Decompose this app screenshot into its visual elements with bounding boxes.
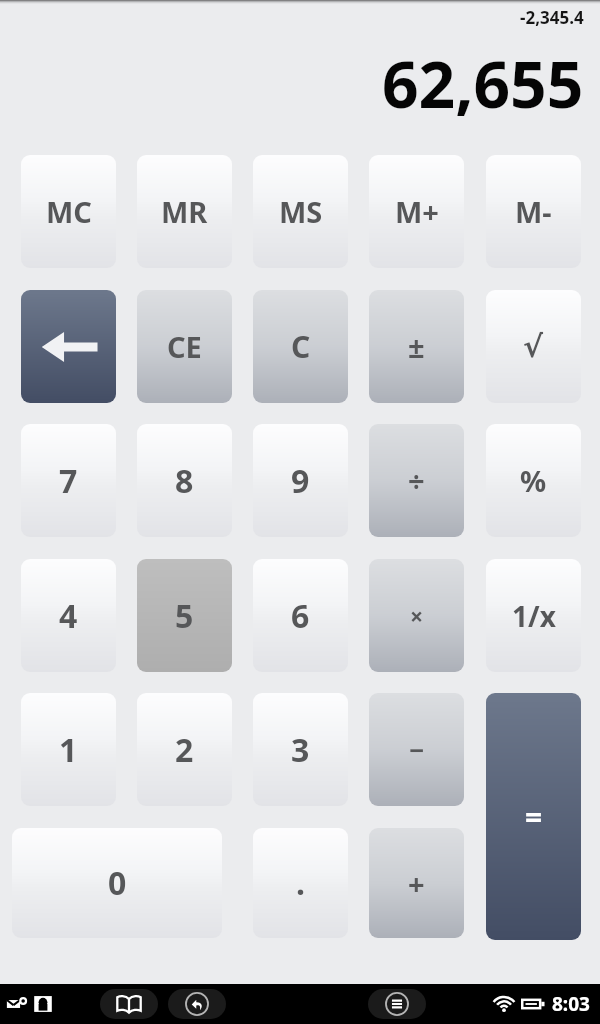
staticText: MS <box>279 192 323 231</box>
button[interactable]: . <box>253 828 348 938</box>
button[interactable]: ÷ <box>369 424 464 537</box>
staticText: + <box>408 864 425 903</box>
staticText: 1/x <box>512 597 556 635</box>
staticText: 8:03 <box>552 991 590 1017</box>
button[interactable]: − <box>369 693 464 806</box>
button[interactable]: √ <box>486 290 581 403</box>
staticText: √ <box>523 329 544 364</box>
staticText: 6 <box>291 594 310 638</box>
staticText: 0 <box>108 861 127 905</box>
staticText: 2 <box>175 728 194 772</box>
button[interactable]: Menu <box>368 989 426 1019</box>
button[interactable]: MC <box>21 155 116 268</box>
staticText: 9 <box>291 459 310 503</box>
button[interactable]: × <box>369 559 464 672</box>
staticText: 7 <box>59 459 78 503</box>
staticText: MC <box>46 192 92 231</box>
button[interactable]: % <box>486 424 581 537</box>
staticText: M+ <box>395 192 439 231</box>
button[interactable]: 5 <box>137 559 232 672</box>
button[interactable]: 7 <box>21 424 116 537</box>
button[interactable]: C <box>253 290 348 403</box>
staticText: ÷ <box>408 461 425 500</box>
staticText: 5 <box>175 594 194 638</box>
staticText: -2,345.4 <box>520 6 584 29</box>
staticText: ± <box>408 327 425 366</box>
staticText: MR <box>161 192 208 231</box>
button[interactable]: CE <box>137 290 232 403</box>
button[interactable]: Equals <box>486 693 581 940</box>
button[interactable]: M+ <box>369 155 464 268</box>
staticText: 62,655 <box>382 40 584 127</box>
button[interactable]: 4 <box>21 559 116 672</box>
staticText: C <box>291 326 311 367</box>
staticText: 4 <box>59 594 78 638</box>
button[interactable]: 9 <box>253 424 348 537</box>
staticText: % <box>520 461 547 500</box>
staticText: 1 <box>59 728 78 772</box>
button[interactable]: 1 <box>21 693 116 806</box>
staticText: . <box>296 861 305 905</box>
button[interactable]: Home <box>100 989 158 1019</box>
staticText: 8 <box>175 459 194 503</box>
staticText: CE <box>167 327 202 366</box>
button[interactable]: 1/x <box>486 559 581 672</box>
staticText: × <box>410 600 424 631</box>
button[interactable]: 2 <box>137 693 232 806</box>
button[interactable]: 0 <box>12 828 222 938</box>
button[interactable]: 3 <box>253 693 348 806</box>
button[interactable]: ± <box>369 290 464 403</box>
button[interactable]: MR <box>137 155 232 268</box>
button[interactable]: Back <box>168 989 226 1019</box>
staticText: − <box>409 732 425 767</box>
button[interactable]: Backspace <box>21 290 116 403</box>
button[interactable]: + <box>369 828 464 938</box>
button[interactable]: MS <box>253 155 348 268</box>
button[interactable]: 6 <box>253 559 348 672</box>
staticText: = <box>525 796 543 837</box>
staticText: M- <box>515 192 552 231</box>
button[interactable]: 8 <box>137 424 232 537</box>
staticText: 3 <box>291 728 310 772</box>
button[interactable]: M- <box>486 155 581 268</box>
